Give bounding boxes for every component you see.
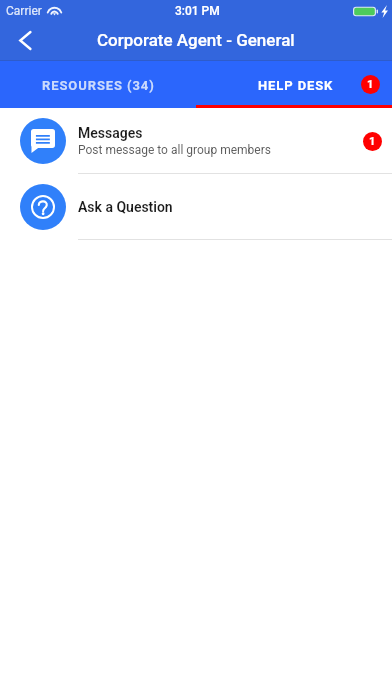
- staticText: 1: [367, 78, 374, 91]
- staticText: RESOURSES (34): [42, 78, 155, 93]
- staticText: HELP DESK: [258, 78, 334, 93]
- staticText: Post message to all group members: [78, 143, 271, 157]
- staticText: 1: [369, 135, 376, 148]
- staticText: Corporate Agent - General: [97, 30, 295, 50]
- staticText: 3:01 PM: [175, 4, 220, 18]
- button[interactable]: HELP DESK: [196, 61, 392, 108]
- staticText: Carrier: [6, 4, 42, 18]
- button[interactable]: Back: [0, 22, 50, 61]
- button[interactable]: RESOURSES (34): [0, 61, 196, 108]
- staticText: Messages: [78, 125, 143, 141]
- button[interactable]: Messages: [0, 108, 392, 174]
- button[interactable]: Ask a Question: [0, 174, 392, 240]
- staticText: Ask a Question: [78, 199, 173, 215]
